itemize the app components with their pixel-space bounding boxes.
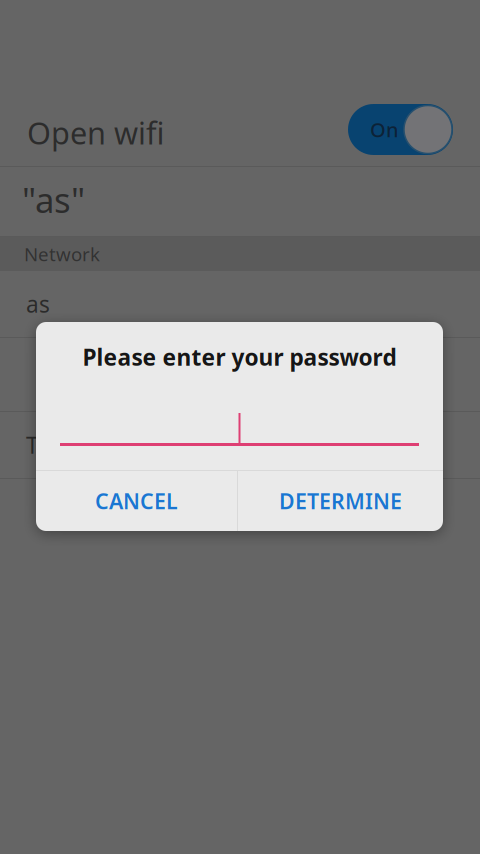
staticText: Please enter your password [82,342,396,372]
button[interactable]: CANCEL [36,471,237,531]
button[interactable]: Hidden network [0,338,480,411]
staticText: Open wifi [27,112,164,153]
button[interactable]: TP-LINK_2.4G [0,412,480,478]
staticText: On [370,116,399,143]
staticText: DETERMINE [279,487,402,515]
staticText: TP-LINK_2.4G [26,430,170,460]
button[interactable]: Password [36,392,443,446]
button[interactable]: as [0,271,480,337]
staticText: "as" [22,176,85,222]
staticText: Network [24,242,100,266]
button[interactable]: "as" [0,167,480,236]
button[interactable]: Open wifi, on [348,107,453,158]
button[interactable]: DETERMINE [238,471,443,531]
staticText: CANCEL [95,487,178,515]
staticText: as [26,289,50,319]
button[interactable]: Open wifi [0,99,480,166]
